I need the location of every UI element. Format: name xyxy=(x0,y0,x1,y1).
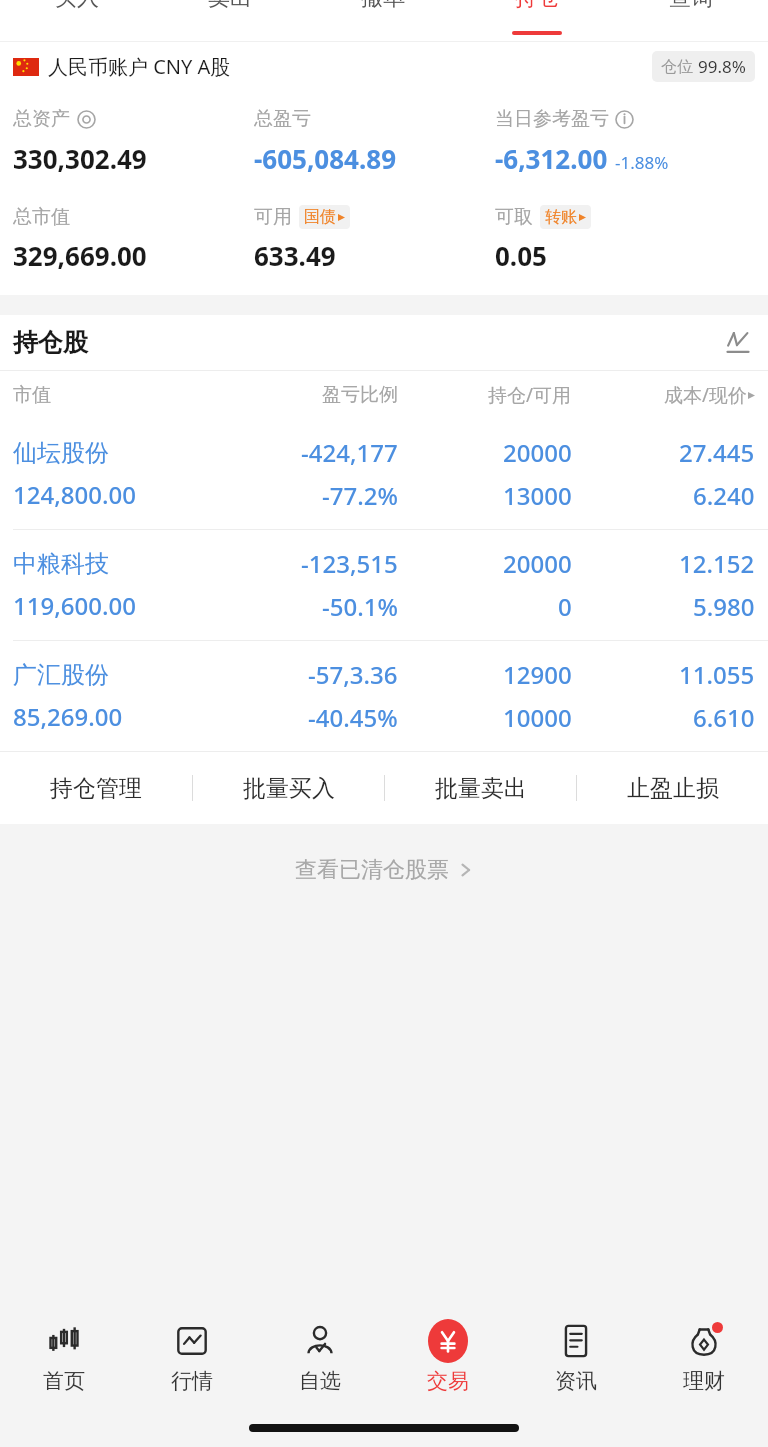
button[interactable]: 查看已清仓股票 xyxy=(0,842,768,898)
button[interactable]: 首页 xyxy=(0,1311,128,1402)
staticText: 中粮科技 xyxy=(13,549,109,579)
staticText: 查看已清仓股票 xyxy=(295,856,449,884)
staticText: 总盈亏 xyxy=(254,107,311,131)
button[interactable]: 交易 xyxy=(384,1311,512,1402)
staticText: 交易 xyxy=(427,1368,469,1394)
staticText: 总资产 xyxy=(13,107,70,131)
staticText: 市值 xyxy=(13,383,51,407)
staticText: 12.152 xyxy=(679,547,755,580)
staticText: 持仓管理 xyxy=(50,774,142,803)
staticText: 总市值 xyxy=(13,205,70,229)
staticText: 持仓 xyxy=(515,0,559,12)
staticText: 20000 xyxy=(503,436,572,469)
button[interactable]: 人民币账户 CNY A股 xyxy=(0,42,768,91)
button[interactable]: 自选 xyxy=(256,1311,384,1402)
button[interactable]: 买入 xyxy=(0,0,153,42)
staticText: -123,515 xyxy=(301,547,398,580)
button[interactable]: 广汇股份 xyxy=(0,641,768,751)
staticText: 行情 xyxy=(171,1368,213,1394)
staticText: -424,177 xyxy=(301,436,398,469)
staticText: 广汇股份 xyxy=(13,660,109,690)
staticText: 盈亏比例 xyxy=(322,383,398,407)
staticText: 11.055 xyxy=(679,658,755,691)
button[interactable]: 国债 xyxy=(299,205,350,229)
staticText: -1.88% xyxy=(615,151,669,174)
staticText: 329,669.00 xyxy=(13,238,147,273)
button[interactable]: Info xyxy=(615,110,634,129)
staticText: -57,3.36 xyxy=(308,658,398,691)
staticText: 卖出 xyxy=(208,0,252,12)
button[interactable]: 撤单 xyxy=(306,0,460,42)
button[interactable]: 中粮科技 xyxy=(0,530,768,640)
staticText: 119,600.00 xyxy=(13,589,136,622)
staticText: 买入 xyxy=(55,0,99,12)
staticText: 12900 xyxy=(503,658,572,691)
button[interactable]: 行情 xyxy=(128,1311,256,1402)
staticText: 10000 xyxy=(503,701,572,734)
staticText: 资讯 xyxy=(555,1368,597,1394)
button[interactable]: 理财 xyxy=(640,1311,768,1402)
staticText: 自选 xyxy=(299,1368,341,1394)
staticText: 批量卖出 xyxy=(435,774,527,803)
button[interactable]: 转账 xyxy=(540,205,591,229)
staticText: -605,084.89 xyxy=(254,141,397,176)
staticText: 20000 xyxy=(503,547,572,580)
staticText: 仙坛股份 xyxy=(13,438,109,468)
staticText: 0.05 xyxy=(495,238,547,273)
staticText: 85,269.00 xyxy=(13,700,123,733)
staticText: 可用 xyxy=(254,205,292,229)
staticText: -50.1% xyxy=(322,590,398,623)
staticText: 理财 xyxy=(683,1368,725,1394)
button[interactable]: 止盈止损 xyxy=(577,752,768,824)
staticText: 124,800.00 xyxy=(13,478,136,511)
button[interactable]: 卖出 xyxy=(153,0,306,42)
button[interactable]: 查询 xyxy=(614,0,768,42)
staticText: -77.2% xyxy=(322,479,398,512)
staticText: 6.240 xyxy=(693,479,755,512)
staticText: 可取 xyxy=(495,205,533,229)
button[interactable]: 批量买入 xyxy=(193,752,384,824)
staticText: 13000 xyxy=(503,479,572,512)
staticText: 27.445 xyxy=(679,436,755,469)
staticText: 止盈止损 xyxy=(627,774,719,803)
staticText: 成本/现价 xyxy=(664,382,748,408)
staticText: 当日参考盈亏 xyxy=(495,107,609,131)
staticText: 转账 xyxy=(545,207,577,227)
staticText: 国债 xyxy=(304,207,336,227)
staticText: 首页 xyxy=(43,1368,85,1394)
staticText: 人民币账户 CNY A股 xyxy=(48,53,231,80)
staticText: -6,312.00 xyxy=(495,141,608,176)
button[interactable]: 仙坛股份 xyxy=(0,419,768,529)
staticText: 99.8% xyxy=(698,55,746,78)
staticText: 633.49 xyxy=(254,238,336,273)
staticText: 330,302.49 xyxy=(13,141,147,176)
staticText: 持仓/可用 xyxy=(488,382,572,408)
staticText: 持仓股 xyxy=(13,327,88,358)
button[interactable]: Toggle asset visibility xyxy=(77,110,96,129)
staticText: 撤单 xyxy=(361,0,405,12)
staticText: 仓位 xyxy=(661,57,693,77)
button[interactable]: 持仓 xyxy=(460,0,614,42)
button[interactable]: 资讯 xyxy=(512,1311,640,1402)
staticText: 0 xyxy=(558,590,572,623)
staticText: 6.610 xyxy=(693,701,755,734)
staticText: 批量买入 xyxy=(243,774,335,803)
staticText: -40.45% xyxy=(308,701,398,734)
button[interactable]: 持仓管理 xyxy=(0,752,192,824)
button[interactable]: Chart view xyxy=(721,326,755,360)
button[interactable]: 批量卖出 xyxy=(385,752,576,824)
staticText: 查询 xyxy=(669,0,713,12)
staticText: 5.980 xyxy=(693,590,755,623)
